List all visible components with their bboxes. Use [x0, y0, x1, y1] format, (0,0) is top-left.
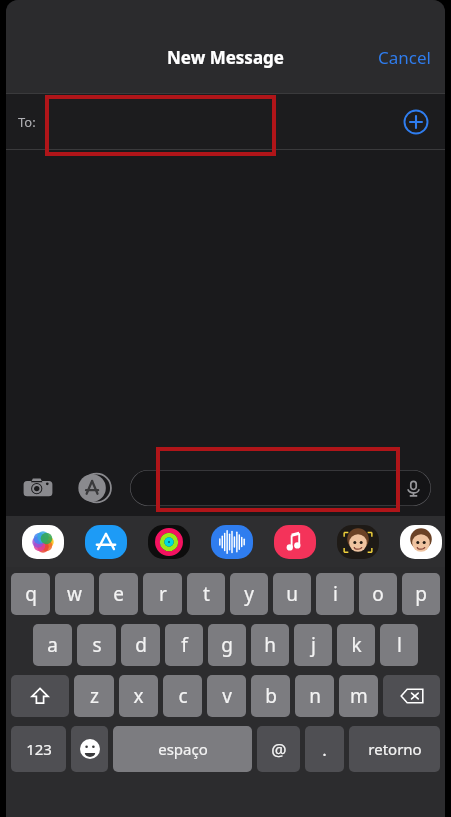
button[interactable]: Record audio [130, 470, 431, 506]
staticText: u [286, 581, 298, 607]
button[interactable]: @ [257, 726, 300, 772]
staticText: j [311, 632, 316, 658]
button[interactable]: Memoji [337, 525, 379, 559]
button[interactable]: Add contact [403, 109, 429, 135]
staticText: New Message [167, 46, 284, 69]
staticText: x [133, 683, 144, 709]
button[interactable]: e [99, 573, 138, 615]
button[interactable]: i [316, 573, 354, 615]
button[interactable]: Voice Memos [211, 525, 253, 559]
button[interactable]: c [163, 675, 202, 717]
button[interactable]: Backspace [383, 675, 440, 717]
button[interactable]: espaço [113, 726, 252, 772]
button[interactable]: Emoji [71, 726, 108, 772]
staticText: 123 [26, 739, 52, 759]
staticText: c [178, 683, 188, 709]
staticText: retorno [368, 739, 422, 759]
staticText: e [113, 581, 124, 607]
button[interactable]: b [251, 675, 290, 717]
button[interactable]: p [402, 573, 440, 615]
button[interactable]: t [187, 573, 225, 615]
staticText: z [90, 683, 99, 709]
staticText: h [264, 632, 276, 658]
staticText: q [25, 581, 37, 607]
staticText: k [351, 632, 362, 658]
button[interactable]: Cancel [364, 38, 445, 77]
button[interactable]: n [295, 675, 334, 717]
staticText: Cancel [378, 46, 431, 69]
button[interactable]: u [273, 573, 311, 615]
button[interactable]: j [294, 624, 332, 666]
button[interactable]: Shift [11, 675, 69, 717]
button[interactable]: App Store [85, 525, 127, 559]
staticText: w [67, 581, 82, 607]
staticText: To: [18, 113, 36, 131]
button[interactable]: x [119, 675, 158, 717]
button[interactable]: m [339, 675, 378, 717]
staticText: i [333, 581, 338, 607]
staticText: espaço [158, 739, 208, 759]
staticText: l [397, 632, 402, 658]
button[interactable]: Fitness [148, 525, 190, 559]
button[interactable]: d [121, 624, 160, 666]
staticText: f [181, 632, 188, 658]
staticText: y [244, 581, 254, 607]
staticText: v [222, 683, 232, 709]
button[interactable]: a [33, 624, 72, 666]
button[interactable]: y [230, 573, 268, 615]
button[interactable]: retorno [349, 726, 440, 772]
button[interactable]: k [337, 624, 375, 666]
button[interactable]: s [77, 624, 116, 666]
button[interactable]: v [207, 675, 246, 717]
button[interactable]: To: [6, 93, 445, 150]
staticText: b [265, 683, 277, 709]
staticText: m [350, 683, 368, 709]
staticText: d [135, 632, 147, 658]
button[interactable]: q [11, 573, 50, 615]
other: Record audio [405, 480, 422, 497]
button[interactable]: z [74, 675, 114, 717]
staticText: p [415, 581, 427, 607]
button[interactable]: Memoji Stickers [400, 525, 442, 559]
button[interactable]: . [305, 726, 344, 772]
button[interactable]: Music [274, 525, 316, 559]
button[interactable]: l [380, 624, 418, 666]
button[interactable]: Photos [22, 525, 64, 559]
staticText: o [372, 581, 384, 607]
button[interactable]: w [55, 573, 94, 615]
staticText: . [322, 738, 327, 761]
staticText: a [47, 632, 58, 658]
button[interactable]: o [359, 573, 397, 615]
staticText: @ [271, 738, 287, 761]
staticText: r [159, 581, 167, 607]
button[interactable]: Camera [22, 472, 54, 504]
button[interactable]: g [208, 624, 246, 666]
staticText: n [309, 683, 321, 709]
button[interactable]: r [143, 573, 182, 615]
button[interactable]: f [165, 624, 203, 666]
button[interactable]: h [251, 624, 289, 666]
staticText: s [92, 632, 102, 658]
staticText: t [203, 581, 210, 607]
staticText: g [221, 632, 233, 658]
button[interactable]: App Store [78, 472, 110, 504]
button[interactable]: 123 [11, 726, 66, 772]
